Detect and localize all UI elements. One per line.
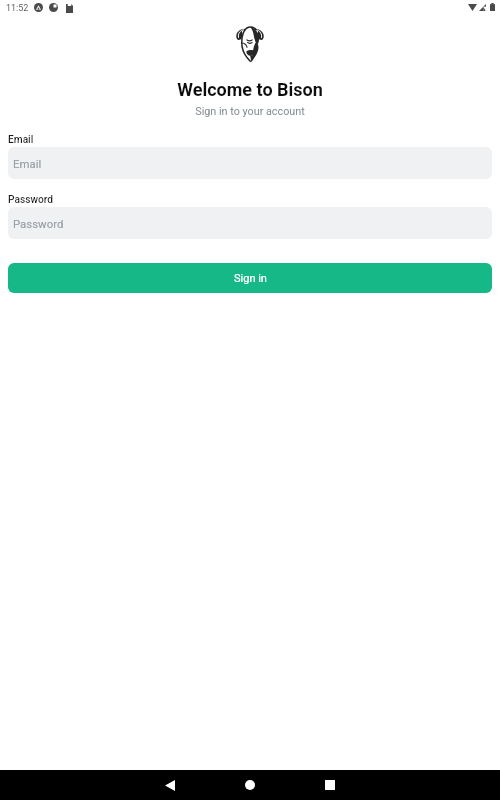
button[interactable]: Recent apps [290,770,370,800]
staticText: Email [13,157,42,170]
staticText: Password [8,194,54,206]
button[interactable]: Home [210,770,290,800]
staticText: Email [8,134,34,146]
button[interactable]: Sign in [8,263,492,293]
staticText: 11:52 [6,3,29,14]
staticText: Sign in to your account [0,105,500,118]
staticText: Password [13,217,64,230]
button[interactable]: Password [8,207,492,239]
button[interactable]: Back [130,770,210,800]
staticText: Welcome to Bison [0,79,500,100]
button[interactable]: Email [8,147,492,179]
staticText: Sign in [234,272,267,285]
